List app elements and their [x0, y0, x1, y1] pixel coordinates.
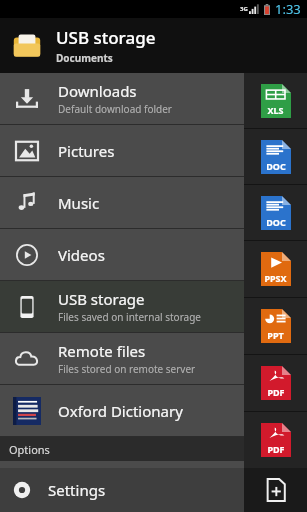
staticText: Oxford Dictionary — [58, 401, 183, 421]
staticText: Pictures — [58, 141, 115, 161]
staticText: PDF — [267, 443, 285, 455]
staticText: USB storage — [56, 26, 156, 49]
button[interactable]: USB storage — [0, 18, 307, 73]
staticText: 3G — [240, 5, 248, 13]
staticText: XLS — [267, 104, 284, 116]
button[interactable]: USB storage — [0, 281, 307, 332]
staticText: Files saved on internal storage — [58, 310, 201, 324]
button[interactable]: New file — [244, 468, 307, 512]
staticText: 1:33 — [275, 0, 301, 18]
button[interactable]: PDF file — [244, 412, 307, 468]
button[interactable]: PPT file — [244, 298, 307, 354]
button[interactable]: Videos — [0, 229, 307, 280]
button[interactable]: PPSX file — [244, 241, 307, 297]
staticText: Music — [58, 193, 100, 213]
button[interactable]: PDF file — [244, 355, 307, 411]
button[interactable]: Pictures — [0, 125, 307, 176]
staticText: Remote files — [58, 341, 146, 361]
staticText: PPT — [267, 329, 284, 341]
button[interactable]: Music — [0, 177, 307, 228]
button[interactable]: Settings — [0, 468, 114, 512]
staticText: USB storage — [58, 289, 145, 309]
button[interactable]: DOC file — [244, 129, 307, 184]
staticText: Videos — [58, 245, 105, 265]
staticText: DOC — [266, 216, 286, 228]
button[interactable]: Options — [0, 437, 307, 461]
staticText: PDF — [267, 386, 285, 398]
staticText: Downloads — [58, 81, 137, 101]
button[interactable]: Downloads — [0, 73, 307, 124]
button[interactable]: DOC file — [244, 185, 307, 240]
staticText: Documents — [56, 51, 113, 65]
staticText: Options — [9, 442, 50, 457]
staticText: DOC — [266, 160, 286, 172]
staticText: Settings — [48, 480, 106, 500]
staticText: PPSX — [264, 272, 287, 284]
staticText: Files stored on remote server — [58, 362, 196, 376]
button[interactable]: Oxford Dictionary — [0, 385, 307, 436]
button[interactable]: XLS file — [244, 73, 307, 128]
staticText: Default download folder — [58, 102, 172, 116]
button[interactable]: Remote files — [0, 333, 307, 384]
